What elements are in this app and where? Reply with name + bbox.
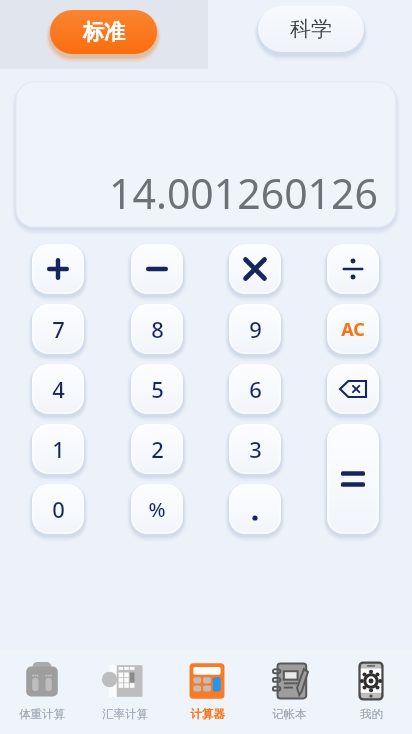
button[interactable]: Plus bbox=[32, 244, 84, 294]
staticText: 3 bbox=[249, 434, 262, 464]
button[interactable]: 7 bbox=[32, 304, 84, 354]
staticText: 6 bbox=[249, 374, 262, 404]
staticText: 5 bbox=[151, 374, 164, 404]
button[interactable]: 6 bbox=[229, 364, 281, 414]
button[interactable]: Backspace bbox=[327, 364, 379, 414]
staticText: 计算器 bbox=[190, 707, 225, 721]
button[interactable]: 2 bbox=[131, 424, 183, 474]
button[interactable]: 标准 bbox=[50, 10, 157, 54]
staticText: 我的 bbox=[360, 707, 383, 721]
button[interactable]: 科学 bbox=[258, 6, 364, 52]
button[interactable]: Multiply bbox=[229, 244, 281, 294]
staticText: 科学 bbox=[290, 16, 332, 42]
button[interactable]: 1 bbox=[32, 424, 84, 474]
button[interactable]: 记帐本 bbox=[248, 650, 330, 734]
button[interactable]: 计算器 bbox=[166, 650, 248, 734]
button[interactable]: Minus bbox=[131, 244, 183, 294]
button[interactable]: 0 bbox=[32, 484, 84, 534]
staticText: 8 bbox=[151, 314, 164, 344]
staticText: 4 bbox=[52, 374, 65, 404]
button[interactable]: 汇率计算 bbox=[83, 650, 166, 734]
button[interactable]: 4 bbox=[32, 364, 84, 414]
staticText: 标准 bbox=[83, 19, 125, 45]
staticText: 记帐本 bbox=[272, 707, 307, 721]
button[interactable]: 体重计算 bbox=[0, 650, 83, 734]
staticText: 2 bbox=[151, 434, 164, 464]
button[interactable]: 3 bbox=[229, 424, 281, 474]
button[interactable]: Divide bbox=[327, 244, 379, 294]
staticText: 0 bbox=[52, 494, 65, 524]
staticText: 汇率计算 bbox=[102, 707, 148, 721]
button[interactable]: 8 bbox=[131, 304, 183, 354]
button[interactable]: 我的 bbox=[330, 650, 412, 734]
staticText: AC bbox=[341, 317, 365, 342]
staticText: 9 bbox=[249, 314, 262, 344]
button[interactable]: % bbox=[131, 484, 183, 534]
button[interactable]: 5 bbox=[131, 364, 183, 414]
staticText: 7 bbox=[52, 314, 65, 344]
staticText: % bbox=[148, 496, 166, 523]
button[interactable]: Decimal point bbox=[229, 484, 281, 534]
button[interactable]: 9 bbox=[229, 304, 281, 354]
button[interactable]: Equals bbox=[327, 424, 379, 534]
button[interactable]: AC bbox=[327, 304, 379, 354]
staticText: 1 bbox=[52, 434, 65, 464]
staticText: 体重计算 bbox=[19, 707, 65, 721]
staticText: 14.001260126 bbox=[109, 165, 378, 221]
